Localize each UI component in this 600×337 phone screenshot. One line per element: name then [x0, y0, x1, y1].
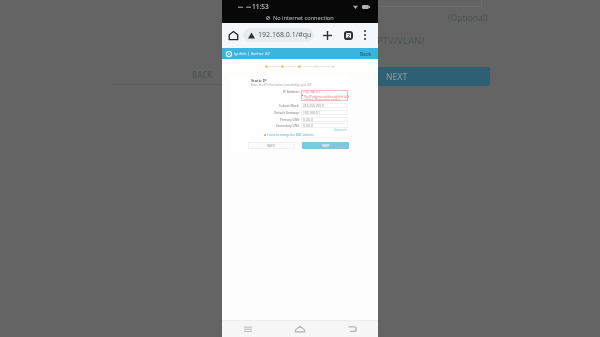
staticText: 0.0.0.0 — [303, 124, 313, 128]
staticText: BACK — [267, 144, 276, 148]
staticText: 11:53 — [252, 2, 269, 11]
staticText: PTV/VLAN) — [377, 34, 425, 47]
button[interactable]: BACK — [180, 68, 213, 80]
button[interactable]: Home — [274, 321, 326, 337]
staticText: NEXT — [386, 71, 408, 83]
staticText: Static IP — [251, 78, 267, 83]
staticText: 0.0.0.0 — [303, 118, 313, 122]
staticText: NEXT — [322, 144, 330, 148]
staticText: BACK — [192, 69, 213, 80]
button[interactable]: 192.168.0.1/#qu — [243, 28, 314, 42]
button[interactable]: Tabs — [341, 28, 355, 42]
staticText: Advanced — [334, 128, 347, 132]
staticText: 192.168.0.1 — [303, 111, 321, 115]
staticText: 2 — [347, 32, 351, 39]
staticText: Secondary DNS: — [276, 124, 300, 128]
staticText: No internet connection — [273, 14, 334, 22]
button[interactable]: New tab — [320, 28, 334, 42]
button[interactable]: NEXT — [302, 142, 349, 149]
staticText: Subnet Mask: — [279, 104, 300, 108]
button[interactable]: Recents — [222, 321, 274, 337]
button[interactable]: NEXT — [362, 67, 490, 86]
staticText: IP Address: — [283, 90, 300, 94]
staticText: Primary DNS: — [280, 118, 300, 122]
button[interactable]: I want to change the MAC address. — [267, 133, 315, 137]
staticText: (Optional) — [448, 12, 488, 24]
staticText: tp-link | Archer A7 — [234, 51, 271, 57]
staticText: 192.168.0.1/#qu — [258, 30, 312, 40]
button[interactable]: Home — [226, 28, 240, 42]
staticText: 255.255.255.0 — [303, 104, 324, 108]
button[interactable]: BACK — [248, 142, 295, 149]
staticText: Enter the IP information provided by you… — [251, 83, 312, 87]
button[interactable]: Back — [326, 321, 378, 337]
button[interactable]: Back — [359, 51, 373, 57]
staticText: Default Gateway: — [274, 111, 300, 115]
staticText: 192.168.0.1 — [303, 90, 321, 94]
staticText: Back — [360, 51, 372, 57]
staticText: The IP address conflicts with the LAN IP — [304, 95, 351, 99]
staticText: I want to change the MAC address. — [267, 133, 315, 137]
button[interactable]: More options — [358, 28, 372, 42]
button[interactable]: Advanced — [331, 128, 347, 132]
staticText: address. Please enter another. — [304, 98, 341, 102]
